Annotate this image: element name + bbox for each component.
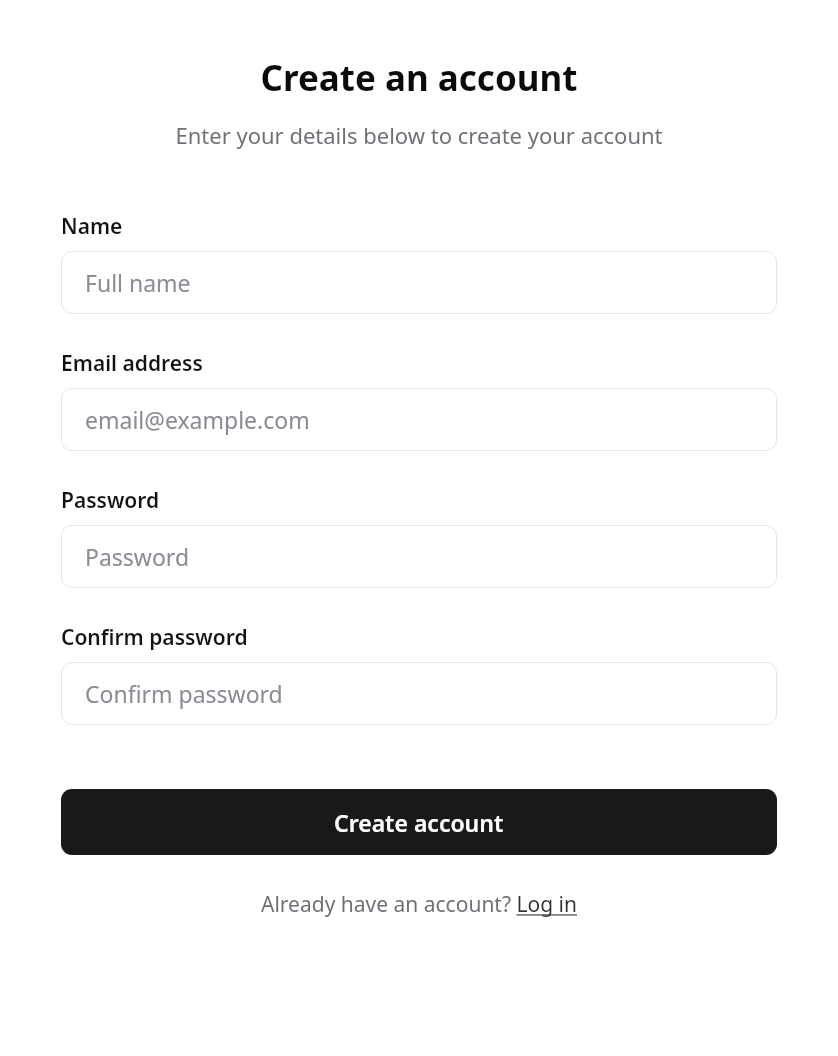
staticText: Confirm password — [85, 678, 283, 709]
staticText: Create account — [334, 807, 504, 838]
staticText: Full name — [85, 267, 191, 298]
staticText: Create an account — [61, 54, 777, 102]
button[interactable]: Password — [61, 525, 777, 588]
button[interactable]: Already have an account? Log in — [261, 890, 577, 919]
button[interactable]: Confirm password — [61, 662, 777, 725]
staticText: Name — [61, 212, 123, 241]
staticText: Confirm password — [61, 623, 248, 652]
staticText: Email address — [61, 349, 203, 378]
staticText: Password — [61, 486, 160, 515]
staticText: email@example.com — [85, 404, 310, 435]
button[interactable]: Full name — [61, 251, 777, 314]
button[interactable]: Create account — [61, 789, 777, 855]
staticText: Password — [85, 541, 190, 572]
button[interactable]: email@example.com — [61, 388, 777, 451]
staticText: Already have an account? Log in — [261, 890, 577, 919]
staticText: Enter your details below to create your … — [61, 120, 777, 150]
